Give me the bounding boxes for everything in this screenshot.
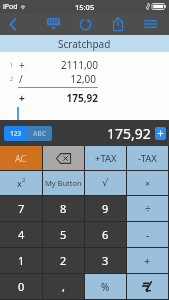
button[interactable]: Share: [105, 14, 131, 34]
staticText: Scratchpad: [58, 37, 111, 51]
staticText: 1: [18, 253, 25, 268]
button[interactable]: Equals: [127, 274, 168, 299]
button[interactable]: 4: [0, 222, 42, 247]
staticText: 3: [102, 253, 109, 268]
staticText: %: [101, 280, 110, 294]
button[interactable]: 0: [0, 274, 42, 299]
button[interactable]: My Button: [43, 171, 84, 195]
staticText: +TAX: [95, 152, 117, 165]
button[interactable]: ÷: [127, 196, 168, 221]
staticText: /: [19, 72, 23, 85]
staticText: AC: [15, 152, 27, 164]
staticText: 15:05: [75, 2, 95, 12]
staticText: ABC: [33, 129, 46, 138]
staticText: 5: [60, 227, 67, 242]
button[interactable]: +TAX: [85, 146, 126, 170]
staticText: 2: [60, 253, 67, 268]
button[interactable]: Insert: [155, 127, 166, 140]
button[interactable]: ABC: [27, 126, 52, 141]
staticText: ÷: [145, 202, 151, 216]
button[interactable]: %: [85, 274, 126, 299]
button[interactable]: 3: [85, 248, 126, 273]
button[interactable]: Back: [0, 13, 26, 35]
staticText: 1: [10, 61, 14, 68]
staticText: 12,00: [70, 72, 96, 85]
staticText: +: [19, 58, 25, 71]
staticText: 2111,00: [61, 58, 98, 71]
button[interactable]: 8: [43, 196, 84, 221]
staticText: 4: [18, 227, 25, 242]
staticText: x: [17, 177, 22, 189]
button[interactable]: ,: [43, 274, 84, 299]
staticText: 7: [18, 201, 25, 216]
button[interactable]: ×: [127, 171, 168, 195]
button[interactable]: 9: [85, 196, 126, 221]
button[interactable]: Delete: [43, 146, 84, 170]
button[interactable]: 5: [43, 222, 84, 247]
staticText: +: [19, 91, 25, 104]
staticText: +: [144, 253, 151, 268]
button[interactable]: 6: [85, 222, 126, 247]
staticText: ,: [62, 279, 65, 294]
button[interactable]: 2: [43, 248, 84, 273]
button[interactable]: x: [0, 171, 42, 195]
staticText: 2: [22, 176, 26, 184]
button[interactable]: AC: [0, 146, 42, 170]
staticText: √: [102, 177, 109, 189]
button[interactable]: 123: [4, 126, 27, 141]
button[interactable]: Undo: [72, 14, 98, 34]
staticText: 2: [10, 75, 14, 82]
staticText: 175,92: [66, 91, 98, 104]
staticText: ×: [145, 177, 151, 189]
button[interactable]: +: [127, 248, 168, 273]
button[interactable]: -: [127, 222, 168, 247]
staticText: 175,92: [107, 124, 151, 143]
button[interactable]: √: [85, 171, 126, 195]
button[interactable]: -TAX: [127, 146, 168, 170]
button[interactable]: 7: [0, 196, 42, 221]
staticText: My Button: [45, 178, 82, 188]
staticText: 123: [10, 129, 22, 138]
button[interactable]: 1: [0, 248, 42, 273]
staticText: 6: [102, 227, 109, 242]
staticText: 0: [18, 279, 25, 294]
button[interactable]: Hide keyboard: [40, 14, 66, 34]
staticText: 8: [60, 201, 67, 216]
staticText: -TAX: [138, 152, 157, 165]
staticText: iPod: [3, 2, 18, 12]
button[interactable]: Menu: [137, 14, 163, 34]
staticText: -: [146, 228, 150, 242]
staticText: 9: [102, 201, 109, 216]
